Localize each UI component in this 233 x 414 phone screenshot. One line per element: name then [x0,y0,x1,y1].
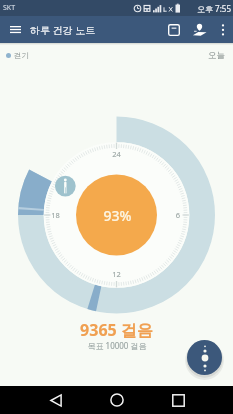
staticText: 오늘 [208,50,225,61]
button[interactable]: Map location [186,16,212,43]
staticText: 하루 건강 노트 [30,23,96,37]
button[interactable]: Calendar [162,16,186,43]
button[interactable]: Recent apps [165,386,191,414]
staticText: 18 [45,210,66,220]
button[interactable]: Back [43,386,69,414]
staticText: SKT [3,3,16,13]
staticText: 오후 7:55 [197,3,231,14]
button[interactable]: Home [104,386,130,414]
button[interactable]: 걷기 [6,51,29,60]
button[interactable]: More options [212,16,233,43]
button[interactable]: 오늘 [208,50,225,61]
staticText: 9365 걸음 [80,319,153,341]
staticText: 걷기 [14,51,29,60]
button[interactable]: Add activity [187,340,222,375]
staticText: 6 [170,210,186,220]
staticText: 24 [106,149,127,159]
staticText: 93% [96,206,139,225]
staticText: 목표 10000 걸음 [87,340,147,351]
button[interactable]: Open navigation menu [0,16,30,43]
staticText: 12 [106,269,127,279]
